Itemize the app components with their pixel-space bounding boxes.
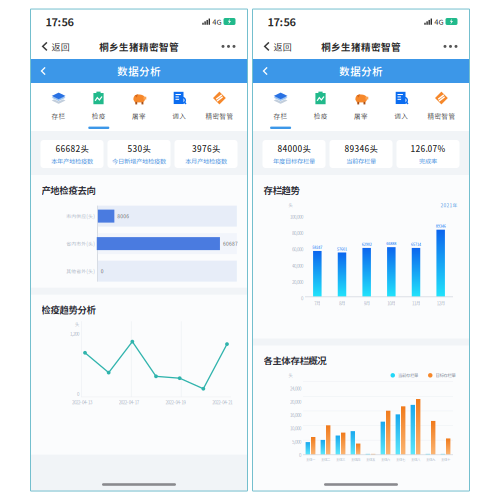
staticText: 省内市外(头) [66,240,95,247]
staticText: 0 [77,391,79,397]
staticText: 10,000 [290,425,301,432]
staticText: 主体四 [351,457,360,462]
staticText: 17:56 [267,13,295,29]
staticText: 存栏 [274,111,288,121]
staticText: 0 [299,452,301,458]
staticText: 17:56 [45,13,73,29]
staticText: 其他省外(头) [66,268,95,275]
staticText: 126.07% [410,142,445,154]
staticText: 头 [288,202,292,208]
staticText: 主体八 [411,457,420,462]
button[interactable]: 屠宰 [341,83,381,131]
staticText: 今日新增产地检疫数 [112,156,166,165]
staticText: 62902 [362,241,372,247]
staticText: 精密智管 [427,111,455,121]
staticText: 66682头 [55,142,88,154]
staticText: 检疫 [314,111,328,121]
staticText: 12月 [437,300,445,307]
staticText: 8月 [339,300,345,307]
staticText: 主体九 [426,457,435,462]
staticText: 2022-04-19 [165,399,185,406]
staticText: 66888 [386,241,396,246]
staticText: 数据分析 [339,63,383,79]
staticText: 11月 [412,300,420,307]
staticText: 产地检疫去向 [41,183,95,197]
staticText: 89346头 [344,142,377,154]
staticText: 存栏趋势 [263,183,299,197]
staticText: 主体十 [441,457,450,462]
staticText: 89346 [436,223,446,229]
staticText: 年度目标存栏量 [273,156,315,165]
staticText: 9月 [364,300,370,307]
staticText: 当前存栏量 [398,372,418,378]
staticText: 1,200 [70,331,79,337]
staticText: 4G [210,16,223,27]
button[interactable]: 返回 [30,34,77,59]
staticText: 2021年 [440,202,457,209]
staticText: 屠宰 [354,111,368,121]
staticText: 存栏 [52,111,66,121]
button[interactable]: More options [434,36,469,57]
button[interactable]: 精密智管 [199,83,239,131]
staticText: 主体二 [321,457,330,462]
staticText: 桐乡生猪精密智管 [99,39,179,53]
staticText: 65714 [411,241,421,247]
button[interactable]: 屠宰 [119,83,159,131]
staticText: 目标存栏量 [435,372,455,378]
button[interactable]: Back [30,60,55,82]
button[interactable]: 存栏 [38,83,79,131]
staticText: 桐乡生猪精密智管 [321,39,401,53]
staticText: 2022-04-21 [212,399,232,406]
button[interactable]: 返回 [252,34,299,59]
staticText: 2022-04-17 [119,399,139,406]
staticText: 主体一 [306,457,315,462]
staticText: 返回 [52,40,70,53]
button[interactable]: 存栏 [260,83,301,131]
staticText: 调入 [394,111,408,121]
staticText: 100,000 [290,213,303,220]
button[interactable]: 调入 [159,83,199,131]
staticText: 10月 [387,300,395,307]
staticText: 主体七 [396,457,405,462]
staticText: 57601 [337,246,347,251]
staticText: 市内供应(头) [66,213,95,220]
staticText: 20,000 [292,279,303,285]
staticText: 主体五 [366,457,375,462]
staticText: 84000头 [277,142,310,154]
button[interactable]: Back [252,60,277,82]
staticText: 2022-04-13 [72,399,92,406]
staticText: 40,000 [292,262,303,269]
staticText: 3976头 [192,142,220,154]
button[interactable]: 调入 [381,83,421,131]
staticText: 返回 [274,40,292,53]
staticText: 80,000 [292,230,303,236]
staticText: 头 [75,321,79,328]
button[interactable]: 精密智管 [421,83,461,131]
staticText: 16,000 [290,412,301,418]
staticText: 本年产地检疫数 [51,156,93,165]
staticText: 检疫趋势分析 [41,303,95,316]
button[interactable]: 检疫 [79,83,119,131]
staticText: 各主体存栏概况 [263,353,326,367]
staticText: 0 [101,268,104,275]
staticText: 4G [432,16,445,27]
staticText: 24,000 [290,385,301,392]
staticText: 5,000 [292,439,301,445]
staticText: 主体六 [381,457,390,462]
button[interactable]: 检疫 [301,83,341,131]
staticText: 完成率 [419,156,437,165]
button[interactable]: More options [212,36,247,57]
staticText: 调入 [172,111,186,121]
staticText: 7月 [314,300,320,307]
staticText: 头 [288,372,292,378]
staticText: 检疫 [92,111,106,121]
staticText: 屠宰 [132,111,146,121]
staticText: 当前存栏量 [346,156,376,165]
staticText: 本月产地检疫数 [185,156,227,165]
staticText: 58247 [312,244,322,250]
staticText: 60687 [223,240,238,247]
staticText: 60,000 [292,246,303,253]
staticText: 数据分析 [117,63,161,79]
staticText: 530头 [127,142,150,154]
staticText: 20,000 [290,399,301,405]
